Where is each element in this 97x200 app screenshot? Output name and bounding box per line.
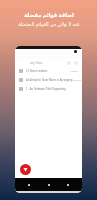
button[interactable]: An Array for Clear Move in Arranging <box>15 75 82 84</box>
staticText: my lists <box>30 60 43 65</box>
staticText: 1 - An Software Title Organising <box>26 87 66 91</box>
staticText: An Array for Clear Move in Arranging <box>26 78 73 82</box>
staticText: عدد لا نهائي من القوائم المفضلة <box>18 21 80 27</box>
staticText: 12 Team Leaders <box>26 69 48 73</box>
button[interactable]: Tab <box>45 181 53 189</box>
button[interactable]: Add list <box>20 164 31 175</box>
button[interactable]: Tab <box>64 181 72 189</box>
button[interactable]: 1 - An Software Title Organising <box>15 84 82 93</box>
staticText: 7 items <box>73 78 82 81</box>
staticText: 3 items <box>70 69 79 72</box>
staticText: اضافة قوائم مفضلة <box>24 11 74 18</box>
button[interactable]: Tab <box>25 181 33 189</box>
button[interactable]: 12 Team Leaders <box>15 66 82 75</box>
